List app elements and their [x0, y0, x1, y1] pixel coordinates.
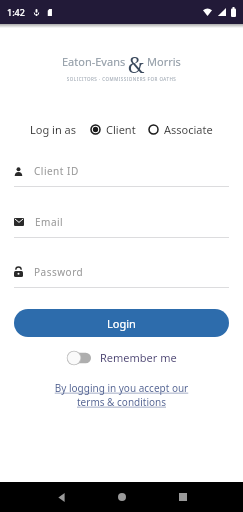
staticText: &	[128, 49, 145, 73]
staticText: Log in as	[30, 122, 76, 137]
button[interactable]: Client ID	[14, 163, 229, 187]
button[interactable]: terms & conditions	[0, 395, 243, 409]
staticText: Login	[107, 316, 136, 331]
staticText: Client ID	[34, 164, 79, 178]
button[interactable]: Associate	[148, 122, 213, 137]
staticText: Morris	[147, 54, 181, 69]
staticText: 1:42	[7, 6, 25, 18]
staticText: SOLICITORS · COMMISSIONERS FOR OATHS	[0, 76, 243, 82]
staticText: Email	[35, 215, 64, 229]
button[interactable]: Login	[14, 309, 229, 337]
staticText: Associate	[164, 122, 213, 137]
button[interactable]: Password	[14, 264, 229, 288]
button[interactable]: Client	[90, 122, 136, 137]
button[interactable]	[168, 482, 198, 512]
button[interactable]: Remember me	[67, 350, 177, 365]
staticText: Password	[34, 265, 84, 279]
staticText: Eaton-Evans	[62, 54, 126, 69]
staticText: Client	[106, 122, 136, 137]
staticText: Remember me	[100, 350, 177, 365]
button[interactable]	[46, 482, 76, 512]
button[interactable]: By logging in you accept our	[0, 381, 243, 395]
button[interactable]: Email	[14, 214, 229, 238]
button[interactable]	[107, 482, 137, 512]
